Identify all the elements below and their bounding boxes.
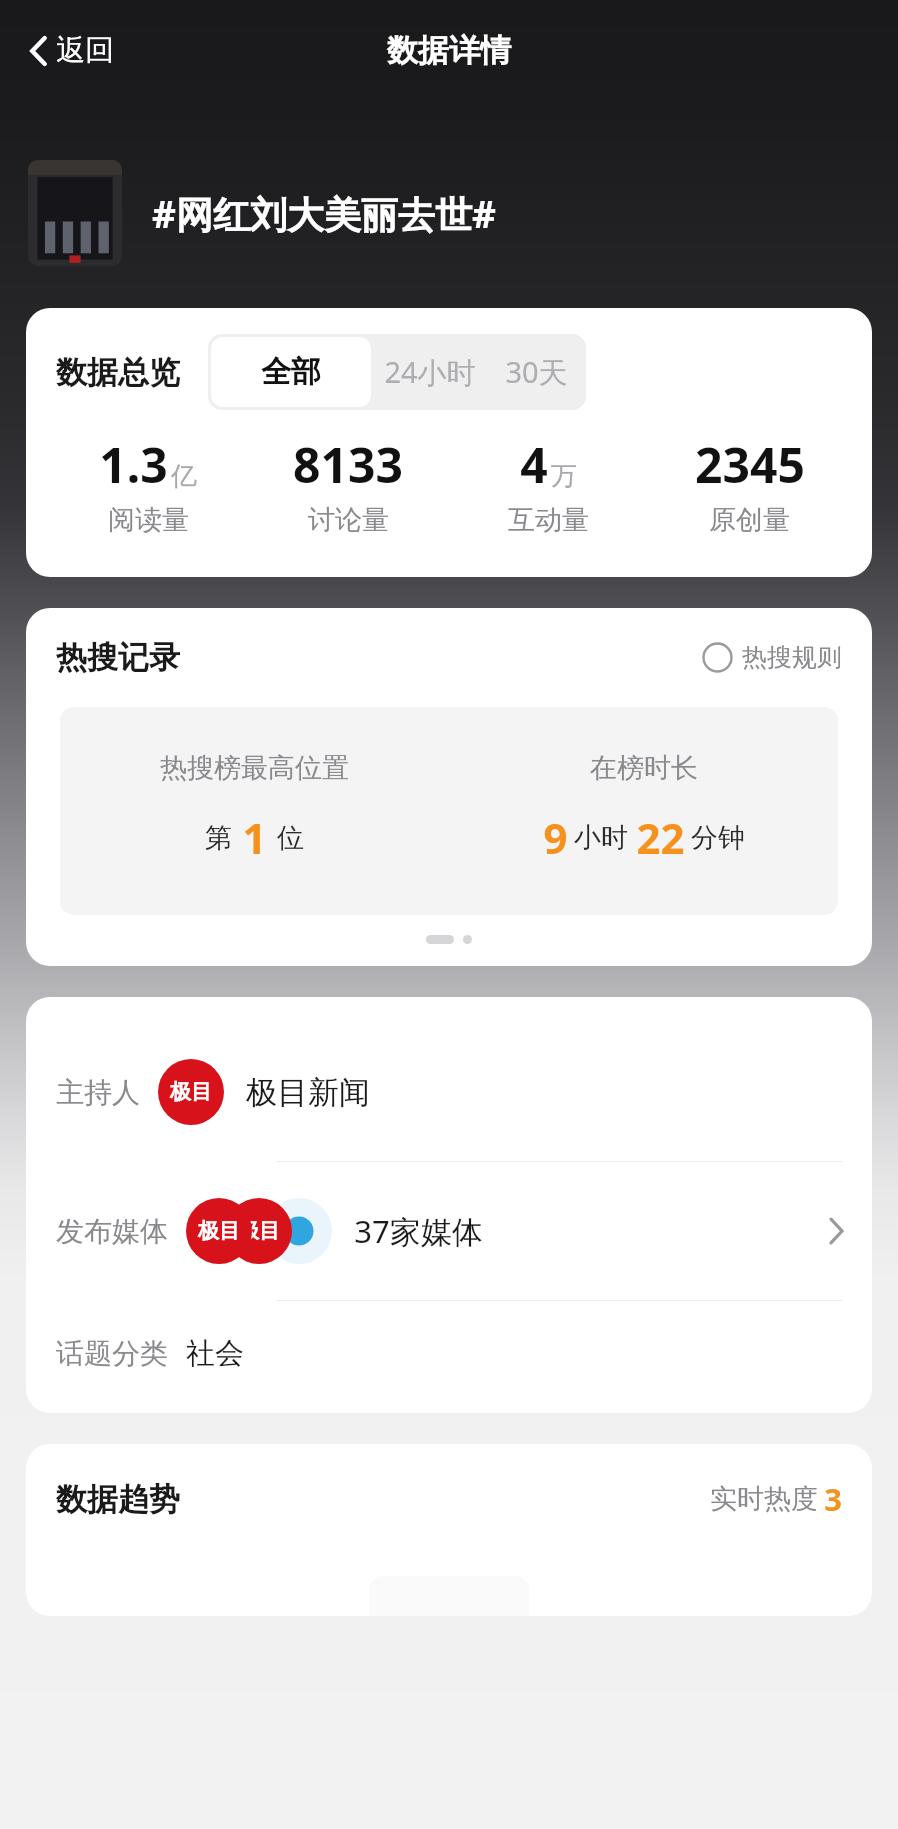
staticText: 话题分类 — [56, 1336, 168, 1371]
staticText: 社会 — [186, 1335, 244, 1372]
button[interactable]: 热搜规则 — [698, 638, 846, 677]
staticText: 极目新闻 — [246, 1073, 370, 1112]
button[interactable]: 返回 — [20, 26, 120, 75]
staticText: 阅读量 — [108, 503, 189, 537]
staticText: 37家媒体 — [354, 1210, 483, 1252]
staticText: 9 — [543, 809, 568, 866]
staticText: 在榜时长 — [590, 751, 698, 785]
button[interactable]: 全部 — [211, 337, 371, 407]
staticText: 1.3 — [99, 432, 168, 497]
staticText: 热搜榜最高位置 — [160, 751, 349, 785]
staticText: 小时 — [574, 821, 628, 855]
staticText: 原创量 — [709, 503, 790, 537]
staticText: #网红刘大美丽去世# — [152, 188, 496, 239]
staticText: 数据详情 — [387, 31, 511, 70]
staticText: 4 — [520, 432, 548, 497]
staticText: 22 — [636, 809, 685, 866]
staticText: 万 — [551, 460, 577, 493]
staticText: 发布媒体 — [56, 1214, 168, 1249]
staticText: 第 — [205, 821, 232, 855]
staticText: 热搜记录 — [56, 638, 180, 677]
staticText: 30天 — [505, 352, 568, 392]
staticText: 主持人 — [56, 1075, 140, 1110]
staticText: 讨论量 — [308, 503, 389, 537]
staticText: 24小时 — [384, 352, 476, 392]
staticText: 8133 — [293, 432, 403, 497]
staticText: 1 — [242, 809, 267, 866]
staticText: 极目 — [238, 1218, 280, 1244]
staticText: 分钟 — [691, 821, 745, 855]
button[interactable]: 30天 — [486, 334, 586, 410]
staticText: 极目 — [198, 1218, 240, 1244]
staticText: 全部 — [261, 353, 321, 391]
button[interactable]: 24小时 — [374, 334, 486, 410]
staticText: 互动量 — [508, 503, 589, 537]
staticText: 数据趋势 — [56, 1480, 180, 1519]
button[interactable]: 主持人 — [26, 1023, 872, 1161]
button[interactable]: 发布媒体 — [26, 1162, 872, 1300]
staticText: 数据总览 — [56, 353, 180, 392]
staticText: 位 — [277, 821, 304, 855]
staticText: 极目 — [170, 1079, 212, 1105]
staticText: 2345 — [695, 432, 805, 497]
staticText: 热搜规则 — [742, 642, 842, 673]
staticText: 返回 — [56, 32, 114, 69]
staticText: 亿 — [171, 460, 197, 493]
staticText: 实时热度 — [710, 1482, 818, 1516]
staticText: 3 — [824, 1478, 842, 1520]
